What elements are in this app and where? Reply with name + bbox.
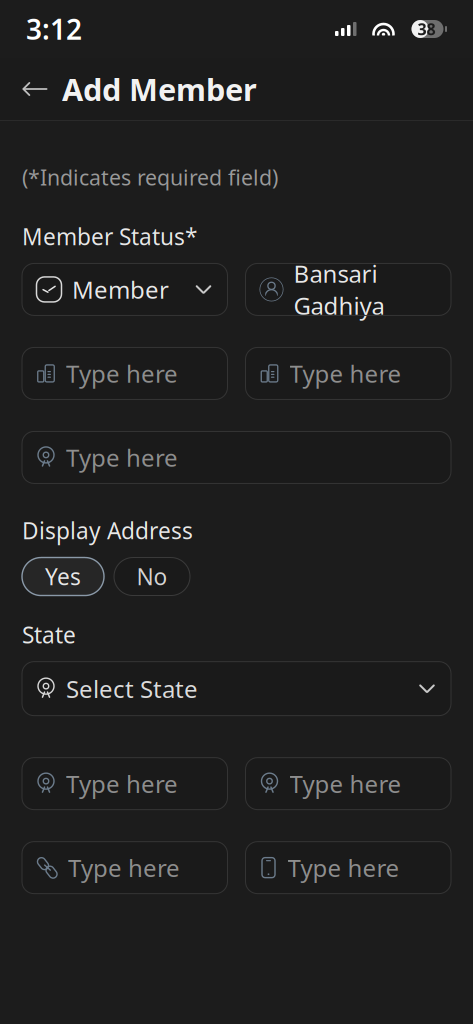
- button[interactable]: Type here: [245, 758, 451, 810]
- staticText: Type here: [289, 768, 401, 800]
- button[interactable]: Type here: [245, 842, 451, 894]
- button[interactable]: Add Member: [0, 58, 473, 120]
- staticText: Type here: [289, 357, 401, 389]
- button[interactable]: Bansari Gadhiya: [245, 263, 451, 315]
- button[interactable]: Type here: [22, 347, 227, 399]
- staticText: Select State: [66, 673, 198, 705]
- staticText: Member: [72, 273, 169, 305]
- staticText: (*Indicates required field): [22, 163, 278, 191]
- staticText: Type here: [66, 357, 178, 389]
- staticText: No: [136, 561, 167, 592]
- staticText: Yes: [45, 561, 81, 592]
- button[interactable]: Type here: [22, 842, 227, 894]
- button[interactable]: Member: [22, 263, 227, 315]
- staticText: Type here: [66, 441, 178, 473]
- staticText: State: [22, 619, 76, 650]
- staticText: 3:12: [26, 10, 82, 48]
- staticText: Bansari Gadhiya: [293, 258, 384, 321]
- staticText: Add Member: [62, 69, 257, 109]
- button[interactable]: No: [114, 557, 190, 595]
- staticText: Type here: [66, 768, 178, 800]
- button[interactable]: Yes: [22, 557, 104, 595]
- staticText: Member Status*: [22, 221, 197, 251]
- button[interactable]: Select State: [22, 662, 451, 716]
- staticText: Display Address: [22, 515, 193, 545]
- staticText: Type here: [287, 852, 399, 884]
- button[interactable]: Type here: [22, 431, 451, 483]
- staticText: Type here: [68, 852, 180, 884]
- button[interactable]: Type here: [245, 347, 451, 399]
- button[interactable]: Type here: [22, 758, 227, 810]
- staticText: 38: [417, 18, 435, 40]
